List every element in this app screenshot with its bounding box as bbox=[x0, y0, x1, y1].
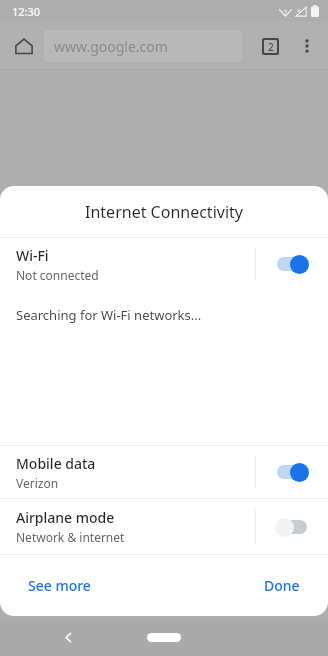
staticText: Internet Connectivity bbox=[85, 201, 243, 223]
staticText: Done bbox=[264, 576, 300, 595]
button[interactable]: More options bbox=[290, 29, 324, 63]
staticText: www.google.com bbox=[54, 37, 168, 56]
staticText: Not connected bbox=[16, 267, 99, 283]
button[interactable]: Airplane mode bbox=[0, 499, 328, 554]
staticText: Verizon bbox=[16, 475, 59, 491]
button[interactable]: Wi-Fi toggle bbox=[256, 238, 328, 290]
staticText: 12:30 bbox=[12, 4, 41, 19]
staticText: Mobile data bbox=[16, 454, 96, 473]
button[interactable]: Airplane mode toggle bbox=[256, 499, 328, 554]
button[interactable]: Mobile data toggle bbox=[256, 446, 328, 498]
button[interactable]: Back bbox=[54, 623, 82, 651]
staticText: Searching for Wi-Fi networks... bbox=[16, 306, 202, 324]
button[interactable]: Done bbox=[250, 568, 314, 603]
button[interactable]: Home bbox=[6, 28, 42, 64]
staticText: Airplane mode bbox=[16, 508, 115, 527]
button[interactable]: Mobile data bbox=[0, 446, 328, 498]
button[interactable]: Home bbox=[147, 633, 181, 642]
staticText: 2 bbox=[268, 40, 274, 53]
staticText: Network & internet bbox=[16, 529, 125, 545]
button[interactable]: Tabs bbox=[254, 30, 286, 62]
staticText: See more bbox=[28, 576, 91, 595]
button[interactable]: See more bbox=[14, 568, 105, 603]
staticText: Wi-Fi bbox=[16, 246, 49, 265]
button[interactable]: Wi-Fi bbox=[0, 238, 328, 290]
button[interactable]: www.google.com bbox=[44, 30, 242, 62]
